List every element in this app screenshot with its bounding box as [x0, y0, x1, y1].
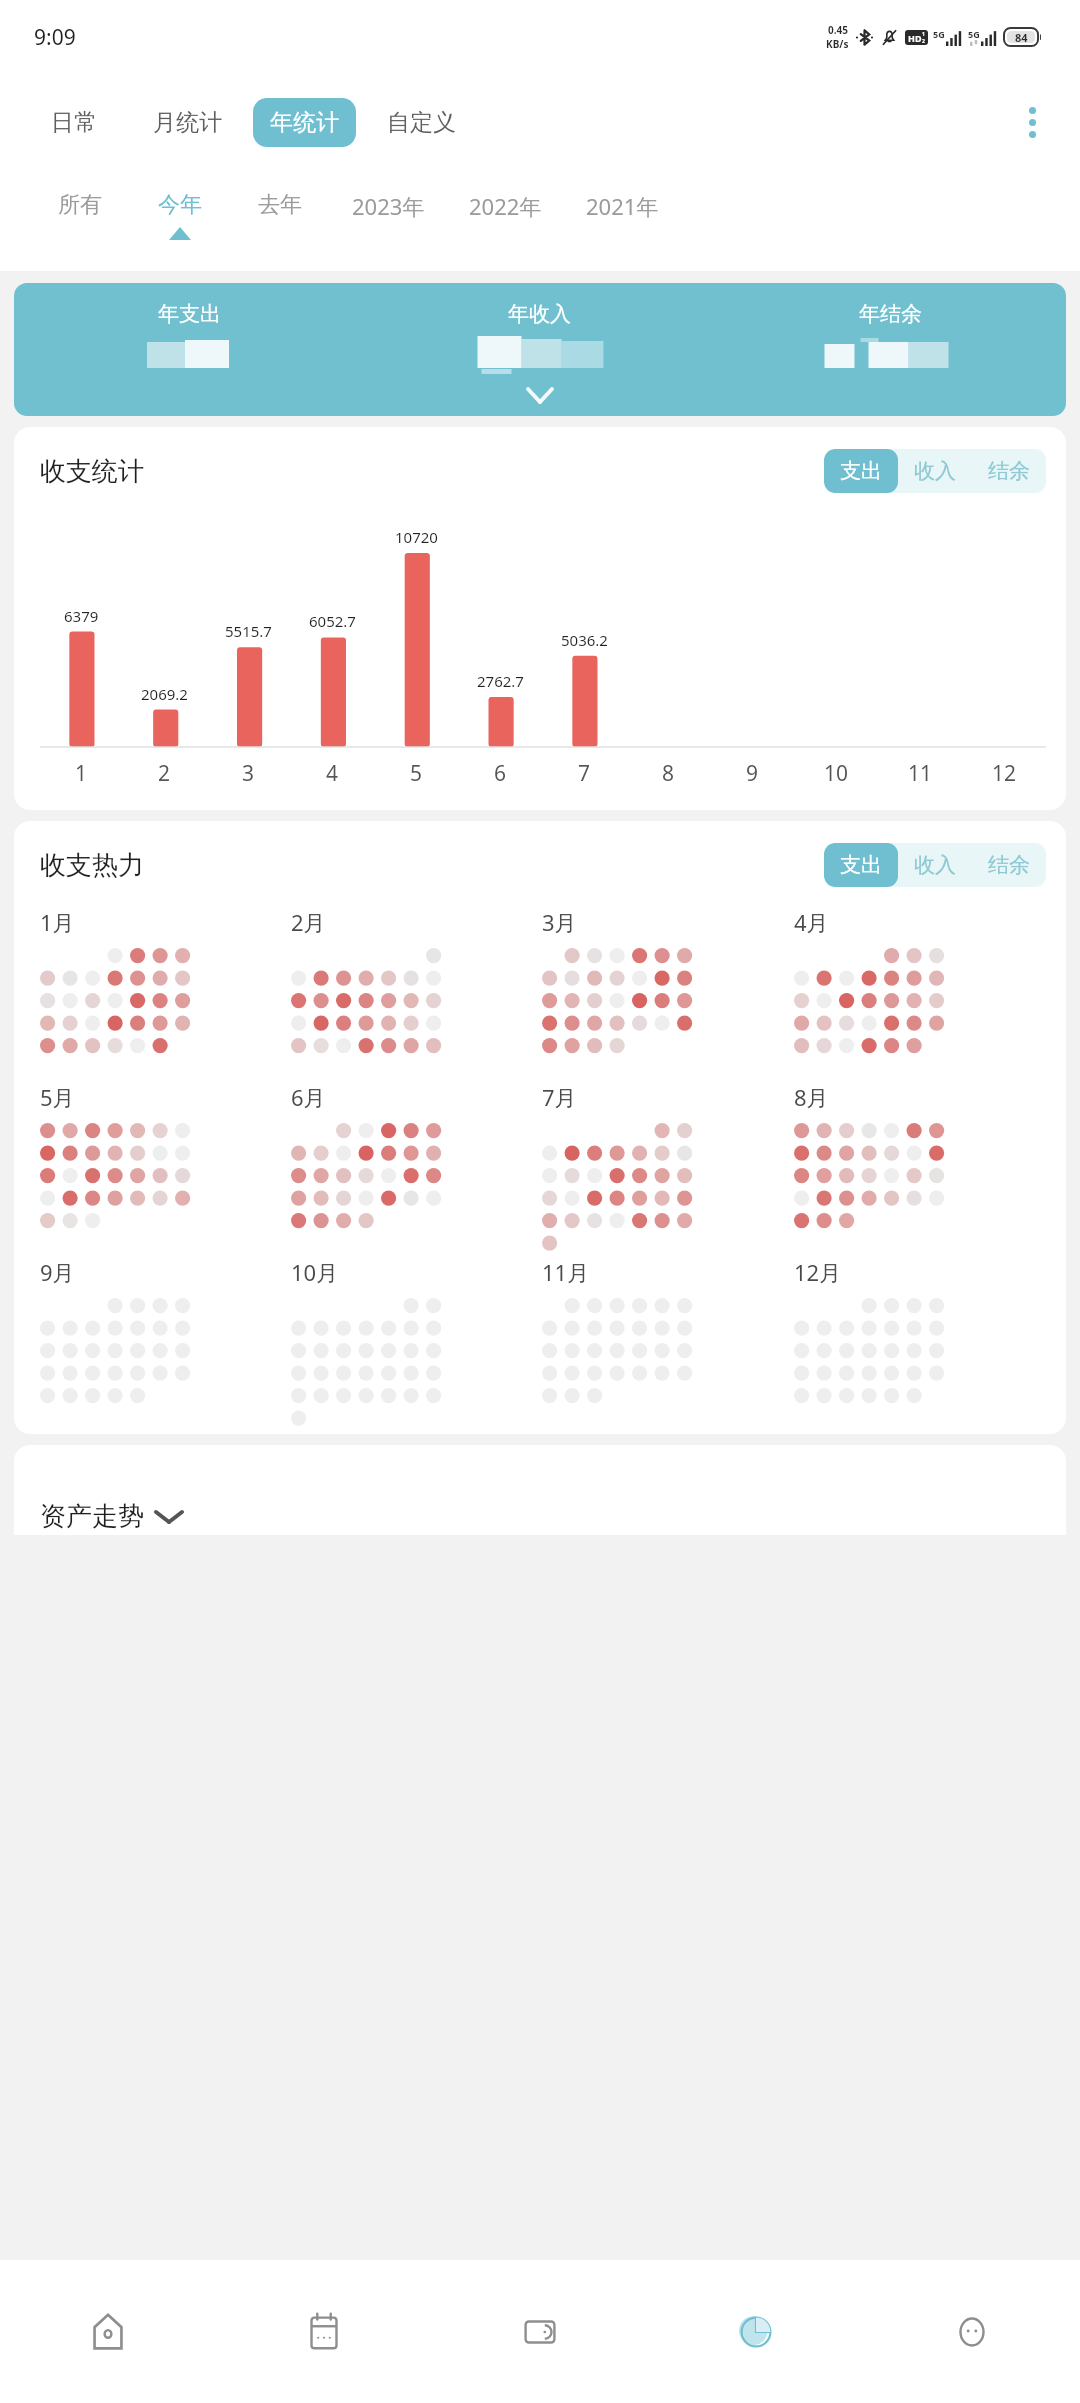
button[interactable]: 所有 — [30, 171, 130, 227]
staticText: 支出 — [840, 852, 882, 878]
button[interactable]: More options — [1021, 99, 1044, 146]
button[interactable]: Calendar — [216, 2260, 432, 2403]
staticText: 7 — [578, 759, 591, 788]
staticText: 2月 — [291, 907, 326, 937]
staticText: 收支统计 — [40, 455, 144, 488]
staticText: 0.45 — [828, 23, 848, 37]
button[interactable]: 支出 — [824, 843, 898, 887]
staticText: 资产走势 — [40, 1500, 144, 1533]
button[interactable]: 收支热力 — [14, 821, 1066, 1434]
staticText: 5G — [968, 28, 980, 40]
button[interactable]: 收入 — [898, 843, 972, 887]
staticText: 1月 — [40, 907, 75, 937]
staticText: 月统计 — [153, 108, 222, 137]
staticText: 11月 — [542, 1257, 590, 1287]
staticText: 11 — [908, 759, 933, 788]
staticText: 12月 — [794, 1257, 842, 1287]
staticText: 5036.2 — [561, 630, 608, 650]
staticText: 自定义 — [387, 108, 456, 137]
staticText: 9月 — [40, 1257, 75, 1287]
staticText: 10 — [824, 759, 849, 788]
staticText: 年支出 — [158, 301, 221, 327]
staticText: 10月 — [291, 1257, 339, 1287]
staticText: 年统计 — [270, 108, 339, 137]
button[interactable]: 年支出 — [14, 283, 1066, 416]
staticText: 3月 — [542, 907, 577, 937]
staticText: 10720 — [395, 527, 438, 547]
staticText: 1 — [922, 31, 925, 38]
staticText: 4 — [326, 759, 339, 788]
staticText: 5 — [410, 759, 423, 788]
button[interactable]: 今年 — [130, 171, 230, 240]
staticText: 12 — [992, 759, 1017, 788]
staticText: 年结余 — [859, 301, 922, 327]
staticText: 2069.2 — [141, 684, 188, 704]
staticText: 2762.7 — [477, 671, 524, 691]
staticText: 1 — [75, 759, 88, 788]
staticText: 2 — [922, 38, 925, 45]
button[interactable]: 结余 — [972, 449, 1046, 493]
button[interactable]: Statistics — [648, 2260, 864, 2403]
staticText: 2022年 — [469, 191, 542, 221]
staticText: 8月 — [794, 1082, 829, 1112]
staticText: 5515.7 — [225, 621, 272, 641]
button[interactable]: 2021年 — [564, 171, 681, 229]
staticText: KB/s — [826, 37, 849, 51]
button[interactable]: 去年 — [230, 171, 330, 227]
staticText: 结余 — [988, 852, 1030, 878]
staticText: 结余 — [988, 458, 1030, 484]
button[interactable]: 结余 — [972, 843, 1046, 887]
staticText: 2023年 — [352, 191, 425, 221]
staticText: 4月 — [794, 907, 829, 937]
button[interactable]: 收入 — [898, 449, 972, 493]
staticText: 6052.7 — [309, 611, 356, 631]
staticText: 5G — [933, 28, 945, 40]
staticText: 日常 — [51, 108, 97, 137]
staticText: 今年 — [158, 191, 202, 219]
staticText: 9 — [746, 759, 759, 788]
button[interactable]: 收支统计 — [14, 427, 1066, 810]
button[interactable]: 资产走势 — [14, 1445, 1066, 1535]
staticText: 3 — [242, 759, 255, 788]
button[interactable]: 年统计 — [253, 98, 356, 147]
staticText: 收入 — [914, 458, 956, 484]
button[interactable]: 日常 — [34, 98, 114, 147]
staticText: HD — [908, 32, 922, 44]
staticText: 2 — [158, 759, 171, 788]
staticText: 8 — [662, 759, 675, 788]
staticText: 支出 — [840, 458, 882, 484]
button[interactable]: Wallet — [432, 2260, 648, 2403]
staticText: 收支热力 — [40, 849, 144, 882]
button[interactable]: Profile — [864, 2260, 1080, 2403]
staticText: 84 — [1015, 30, 1028, 45]
staticText: 去年 — [258, 191, 302, 219]
button[interactable]: 2022年 — [447, 171, 564, 229]
button[interactable]: Home — [0, 2260, 216, 2403]
staticText: 6379 — [64, 606, 99, 626]
staticText: 所有 — [58, 191, 102, 219]
button[interactable]: 支出 — [824, 449, 898, 493]
button[interactable]: 2023年 — [330, 171, 447, 229]
button[interactable]: 自定义 — [370, 98, 473, 147]
staticText: 2021年 — [586, 191, 659, 221]
staticText: 6 — [494, 759, 507, 788]
staticText: 年收入 — [508, 301, 571, 327]
button[interactable]: 月统计 — [136, 98, 239, 147]
staticText: 收入 — [914, 852, 956, 878]
staticText: 7月 — [542, 1082, 577, 1112]
staticText: 5月 — [40, 1082, 75, 1112]
staticText: 6月 — [291, 1082, 326, 1112]
staticText: 9:09 — [34, 23, 76, 52]
